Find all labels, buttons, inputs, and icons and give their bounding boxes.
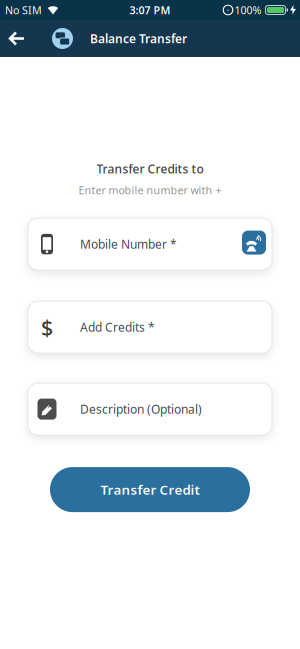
button[interactable]: Mobile Number * <box>28 218 272 270</box>
button[interactable]: Transfer Credit <box>50 467 250 512</box>
staticText: Description (Optional) <box>80 401 202 417</box>
button[interactable]: Pick contact <box>242 231 266 255</box>
button[interactable]: $ <box>28 301 272 353</box>
button[interactable]: Back <box>0 20 34 57</box>
staticText: Transfer Credit <box>100 481 199 498</box>
staticText: Transfer Credits to <box>96 161 203 177</box>
staticText: Add Credits * <box>80 319 155 335</box>
button[interactable]: Description (Optional) <box>28 383 272 435</box>
staticText: 100% <box>234 3 261 17</box>
staticText: $ <box>41 313 53 341</box>
staticText: 3:07 PM <box>129 3 170 17</box>
staticText: Enter mobile number with + <box>78 183 221 197</box>
staticText: Mobile Number * <box>80 236 177 252</box>
staticText: No SIM <box>5 3 42 17</box>
staticText: Balance Transfer <box>90 30 187 46</box>
